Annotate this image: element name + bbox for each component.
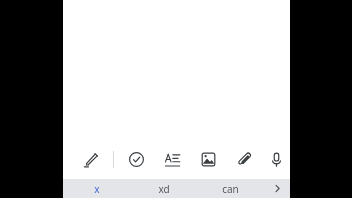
staticText: x bbox=[94, 182, 100, 196]
button[interactable]: can bbox=[197, 179, 264, 198]
button[interactable]: Voice input bbox=[262, 140, 290, 179]
button[interactable]: Insert image bbox=[190, 140, 226, 179]
staticText: xd bbox=[158, 182, 170, 196]
staticText: can bbox=[222, 182, 239, 196]
button[interactable]: Attach file bbox=[226, 140, 262, 179]
button[interactable]: More suggestions bbox=[264, 179, 290, 198]
button[interactable]: Draw / handwriting bbox=[73, 140, 109, 179]
button[interactable]: Formatting bbox=[154, 140, 190, 179]
button[interactable]: x bbox=[63, 179, 130, 198]
button[interactable]: Tasks bbox=[118, 140, 154, 179]
button[interactable]: xd bbox=[130, 179, 197, 198]
